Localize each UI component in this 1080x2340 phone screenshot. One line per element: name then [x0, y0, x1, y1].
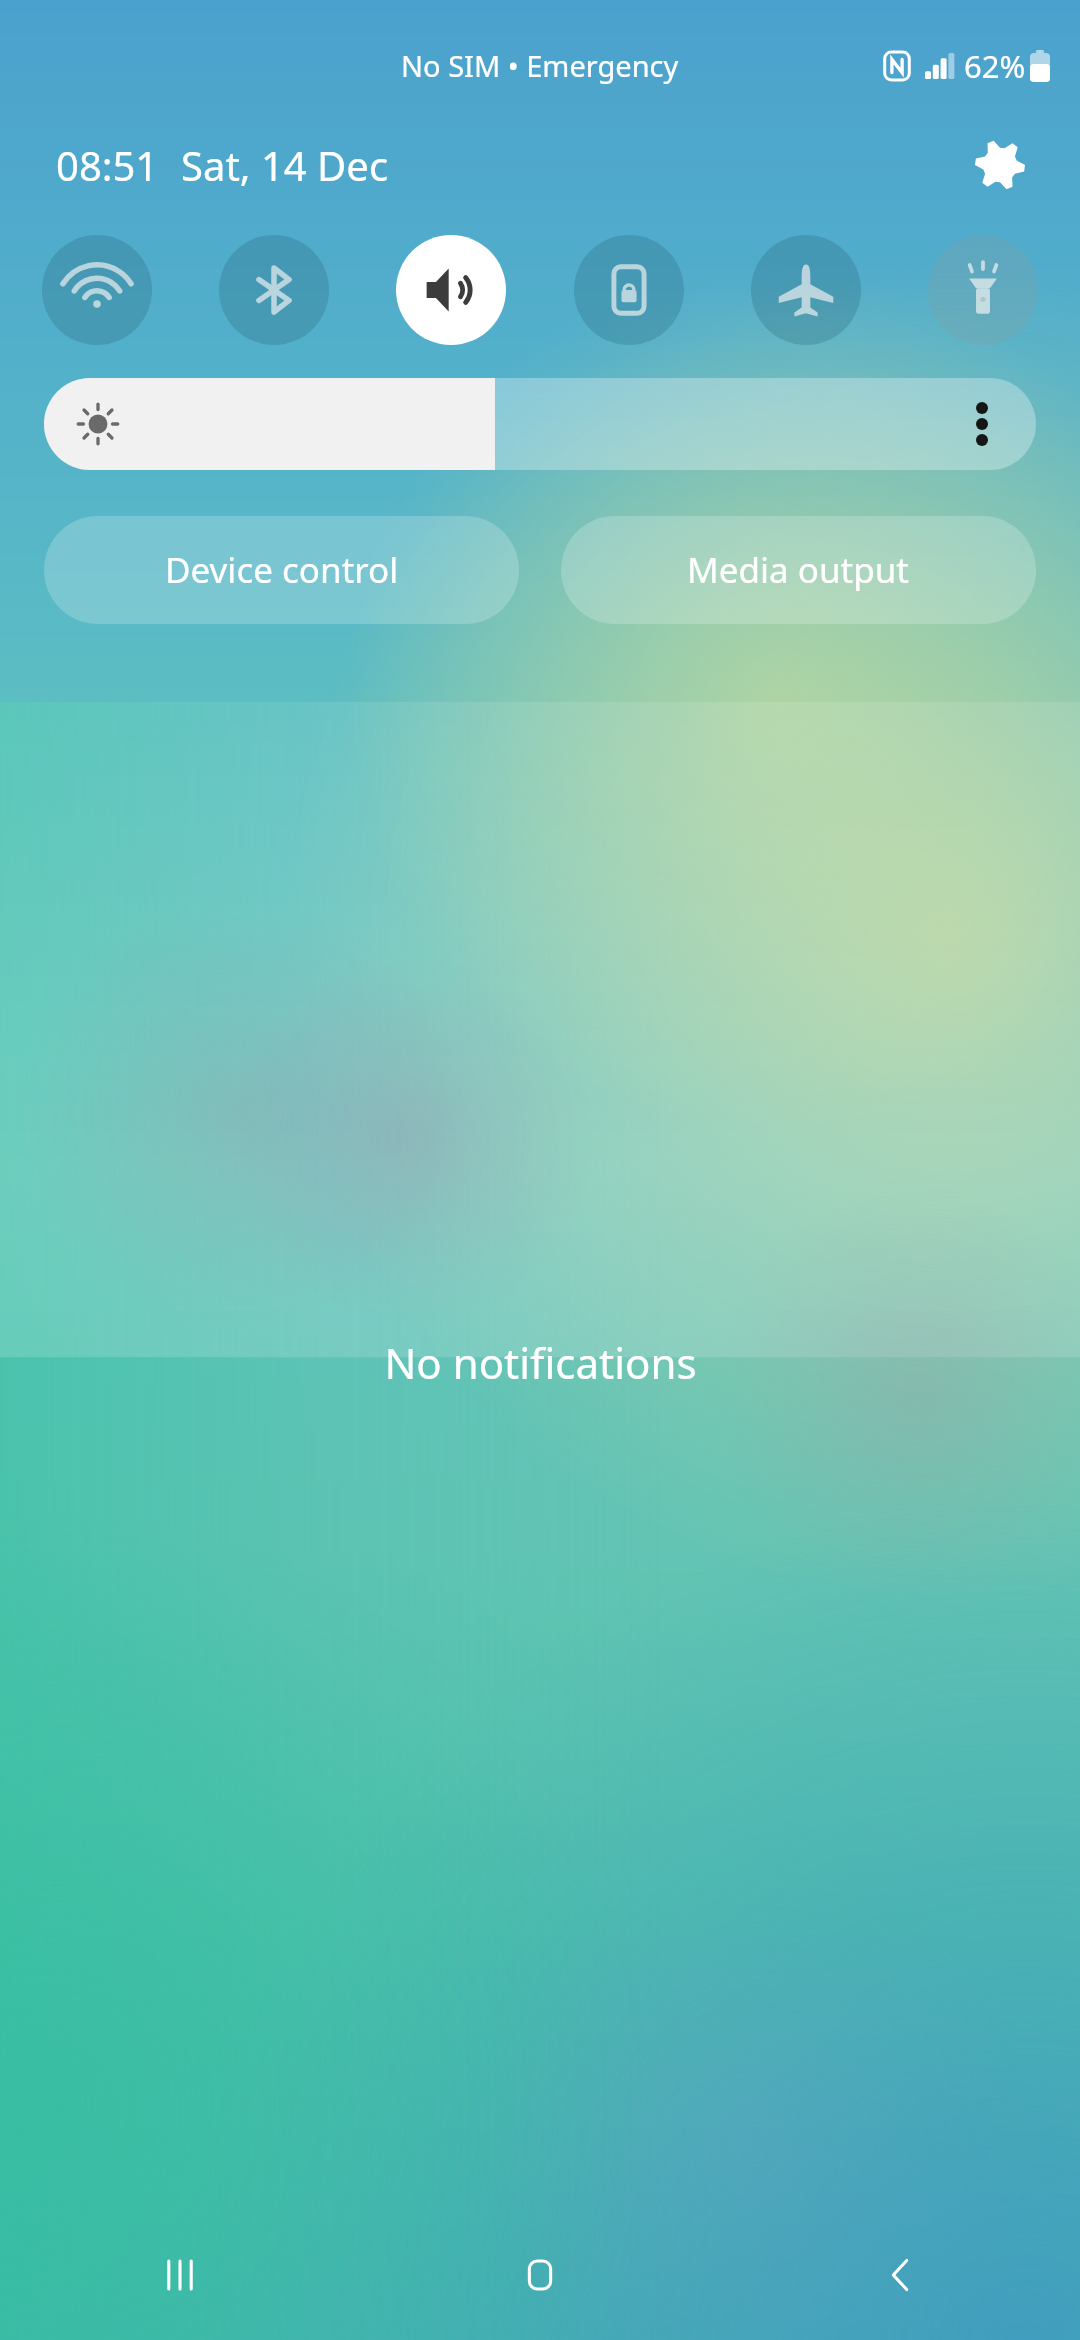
button[interactable]: Auto rotate	[574, 235, 684, 345]
button[interactable]: Device control	[44, 516, 519, 624]
staticText: 62%	[964, 45, 1026, 87]
button[interactable]: Wi-Fi	[42, 235, 152, 345]
button[interactable]: Bluetooth	[219, 235, 329, 345]
staticText: 08:51	[56, 138, 159, 192]
button[interactable]: Recents	[0, 2210, 360, 2340]
button[interactable]: Home	[360, 2210, 720, 2340]
button[interactable]: Settings	[964, 129, 1036, 201]
staticText: Device control	[165, 546, 399, 594]
button[interactable]: Back	[720, 2210, 1080, 2340]
button[interactable]: Sound	[396, 235, 506, 345]
button[interactable]: Media output	[561, 516, 1036, 624]
staticText: No SIM • Emergency	[401, 46, 679, 85]
button[interactable]: Brightness	[44, 378, 1036, 470]
button[interactable]: More brightness options	[954, 396, 1010, 452]
button[interactable]: Flight mode	[751, 235, 861, 345]
staticText: No notifications	[384, 1334, 697, 1391]
staticText: Sat, 14 Dec	[181, 138, 389, 192]
button[interactable]: Flashlight	[928, 235, 1038, 345]
staticText: Media output	[687, 546, 910, 594]
